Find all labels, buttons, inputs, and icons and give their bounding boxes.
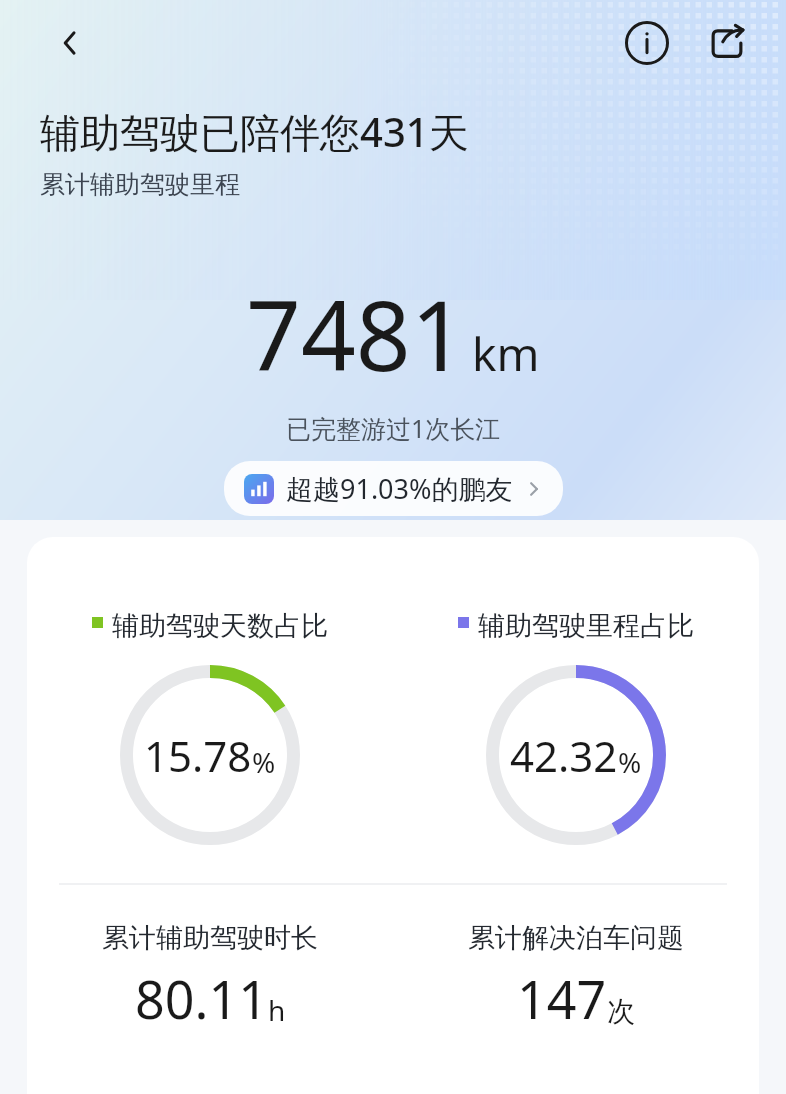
- staticText: 累计辅助驾驶时长: [102, 921, 318, 955]
- staticText: %: [252, 743, 276, 781]
- staticText: 42.32: [510, 727, 618, 784]
- staticText: 累计解决泊车问题: [468, 921, 684, 955]
- button[interactable]: Info: [614, 10, 680, 76]
- button[interactable]: Share: [694, 10, 760, 76]
- staticText: 80.11: [135, 963, 268, 1034]
- staticText: 已完整游过1次长江: [286, 411, 501, 445]
- staticText: 15.78: [144, 727, 252, 784]
- staticText: 147: [517, 963, 607, 1034]
- button[interactable]: 辅助驾驶天数占比: [27, 609, 393, 643]
- staticText: h: [268, 991, 286, 1029]
- button[interactable]: 累计解决泊车问题: [393, 921, 759, 1034]
- staticText: %: [618, 743, 642, 781]
- staticText: 辅助驾驶已陪伴您431天: [40, 104, 469, 159]
- button[interactable]: 超越91.03%的鹏友: [224, 461, 563, 516]
- button[interactable]: Back: [34, 7, 106, 79]
- staticText: 辅助驾驶天数占比: [112, 609, 328, 643]
- button[interactable]: 累计辅助驾驶时长: [27, 921, 393, 1034]
- button[interactable]: 辅助驾驶里程占比: [393, 609, 759, 643]
- staticText: 辅助驾驶里程占比: [478, 609, 694, 643]
- staticText: 超越91.03%的鹏友: [286, 470, 513, 507]
- staticText: km: [472, 322, 540, 385]
- staticText: 次: [607, 994, 635, 1029]
- staticText: 累计辅助驾驶里程: [40, 169, 240, 200]
- staticText: 7481: [246, 268, 466, 399]
